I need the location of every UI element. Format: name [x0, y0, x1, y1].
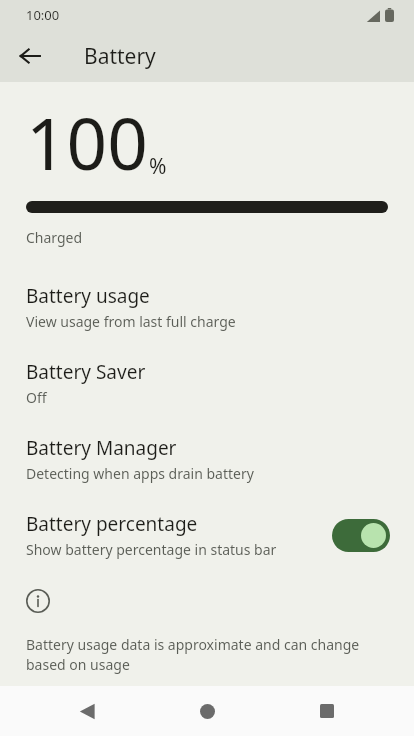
- staticText: 100: [26, 94, 148, 191]
- button[interactable]: Recent apps: [303, 687, 351, 735]
- staticText: Off: [26, 388, 47, 407]
- staticText: Battery usage data is approximate and ca…: [26, 635, 378, 674]
- button[interactable]: Battery Saver: [0, 345, 414, 421]
- staticText: Battery usage: [26, 283, 150, 309]
- staticText: Battery Saver: [26, 359, 146, 385]
- staticText: Battery percentage: [26, 511, 198, 537]
- button[interactable]: Battery percentage toggle: [332, 519, 390, 552]
- staticText: Show battery percentage in status bar: [26, 540, 277, 559]
- other: Information: [26, 589, 50, 613]
- staticText: Charged: [26, 228, 83, 247]
- button[interactable]: Battery Manager: [0, 421, 414, 497]
- staticText: %: [149, 152, 167, 181]
- staticText: Detecting when apps drain battery: [26, 464, 254, 483]
- staticText: Battery Manager: [26, 435, 177, 461]
- button[interactable]: Back: [63, 687, 111, 735]
- staticText: Battery: [84, 42, 156, 71]
- button[interactable]: Home: [183, 687, 231, 735]
- button[interactable]: Battery percentage: [0, 497, 414, 573]
- button[interactable]: Back: [8, 34, 52, 78]
- staticText: View usage from last full charge: [26, 312, 236, 331]
- staticText: 10:00: [26, 6, 60, 24]
- button[interactable]: Battery usage: [0, 269, 414, 345]
